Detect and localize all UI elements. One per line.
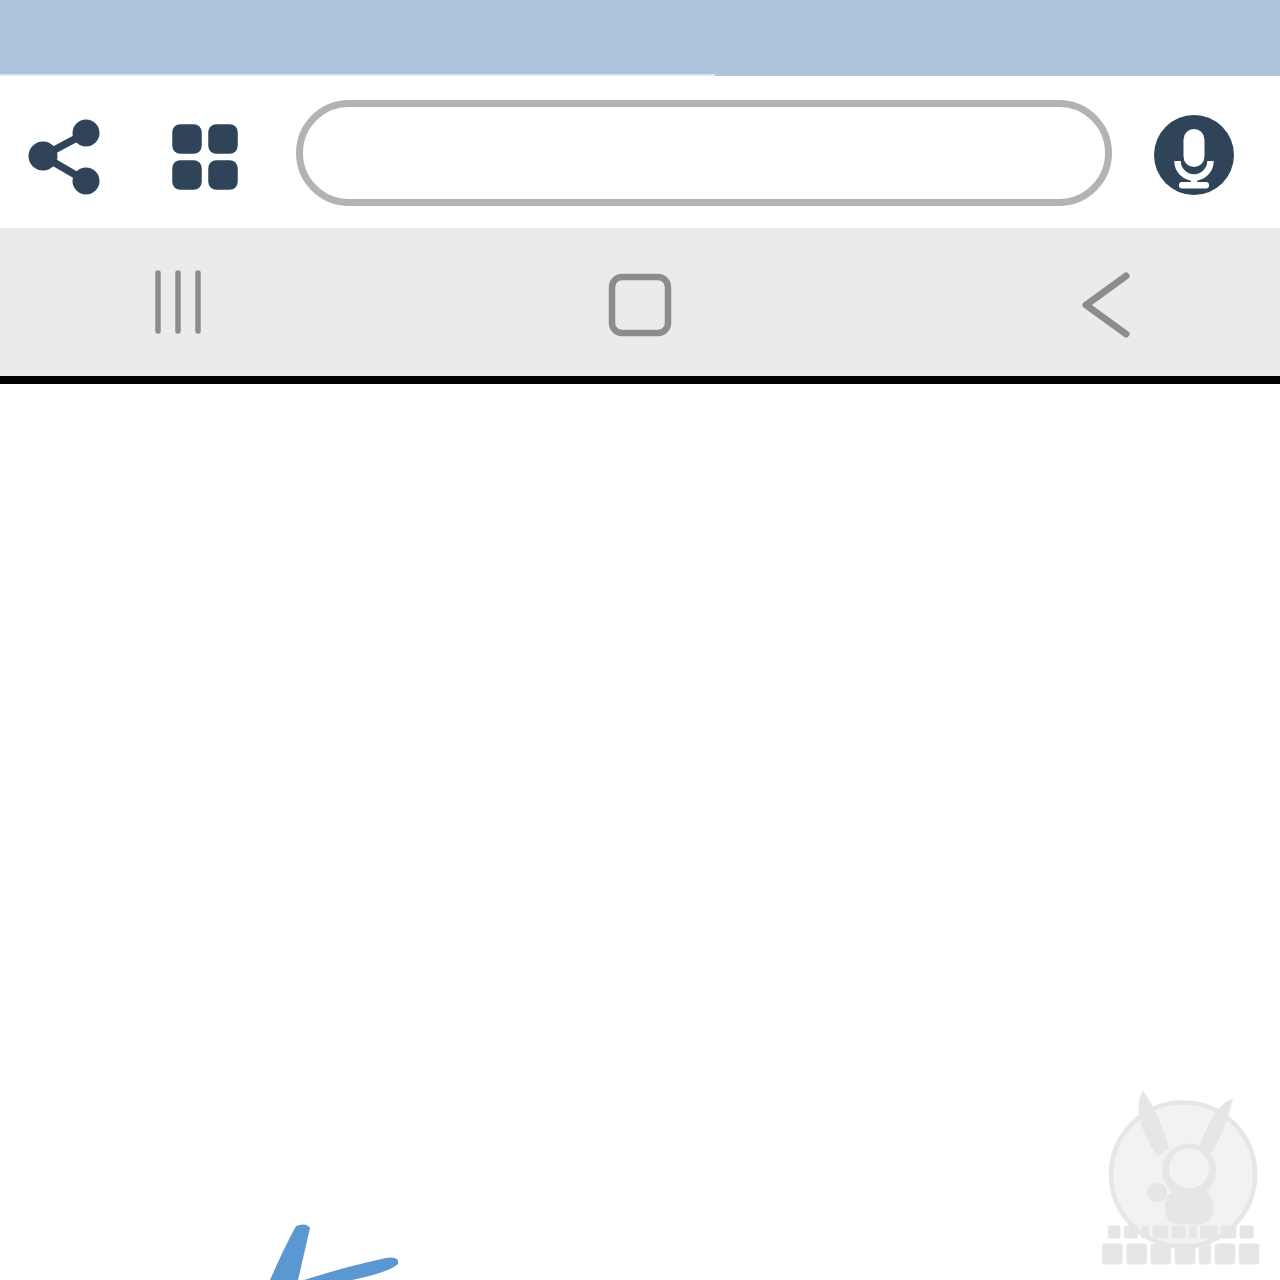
button[interactable]: Voice search — [1152, 113, 1236, 197]
button[interactable]: Share — [18, 108, 112, 202]
button[interactable]: Apps grid — [158, 110, 252, 204]
button[interactable]: Recent apps — [118, 242, 238, 362]
button[interactable]: Back — [1040, 245, 1160, 365]
button[interactable]: Search — [296, 100, 1112, 206]
button[interactable]: Home — [580, 245, 700, 365]
